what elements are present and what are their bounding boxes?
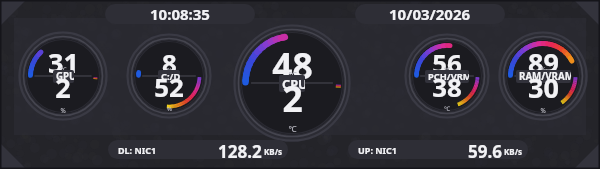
staticText: UP: NIC1 <box>358 144 398 156</box>
staticText: 128.2 <box>218 140 262 159</box>
staticText: 89 <box>528 44 559 81</box>
staticText: ℃ <box>60 65 67 74</box>
staticText: 8 <box>162 45 177 80</box>
staticText: ℃ <box>444 105 450 113</box>
button[interactable]: PCH/VRM <box>425 70 469 83</box>
staticText: 10:08:35 <box>150 4 210 24</box>
staticText: 2 <box>55 69 71 106</box>
staticText: ℃ <box>444 66 450 74</box>
button[interactable]: C:/D: <box>158 70 180 83</box>
button[interactable]: Clock <box>105 4 255 24</box>
staticText: % <box>167 66 172 74</box>
staticText: 31 <box>48 44 79 81</box>
staticText: 10/03/2026 <box>389 4 471 24</box>
button[interactable]: UP: NIC1 <box>348 140 528 159</box>
staticText: KB/s <box>264 146 282 157</box>
staticText: 30 <box>528 69 559 106</box>
staticText: % <box>167 105 172 113</box>
button[interactable]: CPU <box>279 75 305 92</box>
button[interactable]: RAM/VRAM <box>516 70 571 83</box>
button[interactable]: GPU <box>53 70 74 83</box>
staticText: % <box>540 65 546 74</box>
staticText: ℃ <box>288 69 297 80</box>
staticText: 59.6 <box>468 140 502 159</box>
staticText: 48 <box>272 41 313 89</box>
staticText: 52 <box>154 69 184 104</box>
staticText: KB/s <box>504 146 522 157</box>
staticText: 56 <box>432 45 462 80</box>
staticText: DL: NIC1 <box>118 144 157 156</box>
staticText: % <box>60 106 66 115</box>
staticText: PCH/VRM <box>428 70 469 83</box>
button[interactable]: DL: NIC1 <box>108 140 288 159</box>
staticText: ℃ <box>288 123 297 134</box>
staticText: % <box>540 106 546 115</box>
button[interactable]: Date <box>355 4 505 24</box>
staticText: CPU <box>282 75 305 92</box>
staticText: RAM/VRAM <box>519 70 571 83</box>
staticText: 38 <box>432 69 462 104</box>
staticText: GPU <box>56 70 74 83</box>
staticText: C:/D: <box>161 70 180 83</box>
staticText: 2 <box>282 74 303 122</box>
